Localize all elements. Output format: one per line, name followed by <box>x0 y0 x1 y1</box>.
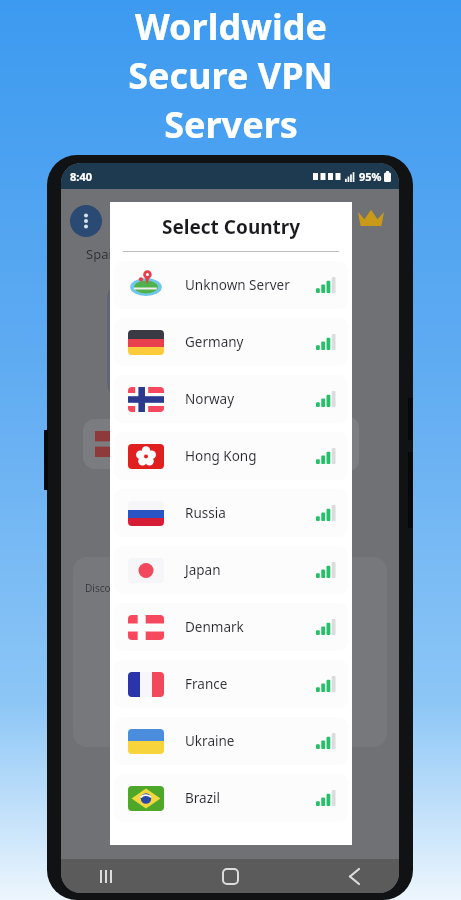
staticText: Disconnected <box>85 581 149 595</box>
staticText: Select Country <box>162 214 301 240</box>
button[interactable]: Home <box>213 859 247 893</box>
button[interactable]: Recent apps <box>89 859 123 893</box>
button[interactable]: France <box>114 660 348 708</box>
button[interactable]: Brazil <box>114 774 348 822</box>
button[interactable]: Denmark <box>114 603 348 651</box>
staticText: Ukraine <box>185 732 316 750</box>
staticText: 8:40 <box>70 169 92 184</box>
staticText: Unknown Server <box>185 276 316 294</box>
staticText: France <box>185 675 316 693</box>
staticText: Russia <box>185 504 316 522</box>
button[interactable]: More options <box>70 205 102 237</box>
staticText: Denmark <box>185 618 316 636</box>
staticText: Norway <box>185 390 316 408</box>
staticText: Germany <box>185 333 316 351</box>
button[interactable]: Power <box>309 485 351 527</box>
staticText: Spain <box>86 245 120 263</box>
button[interactable]: Japan <box>114 546 348 594</box>
staticText: Hong Kong <box>185 447 316 465</box>
staticText: Brazil <box>185 789 316 807</box>
staticText: Secure VPN <box>128 51 333 100</box>
button[interactable]: Hong Kong <box>114 432 348 480</box>
staticText: Worldwide <box>135 2 327 51</box>
button[interactable]: Unknown Server <box>114 261 348 309</box>
staticText: Japan <box>185 561 316 579</box>
staticText: Servers <box>164 100 298 149</box>
button[interactable]: Norway <box>114 375 348 423</box>
button[interactable]: Russia <box>114 489 348 537</box>
button[interactable]: Premium <box>355 205 387 229</box>
button[interactable]: Expand <box>297 417 359 471</box>
staticText: 95% <box>359 169 382 184</box>
button[interactable]: Back <box>337 859 371 893</box>
button[interactable]: Ukraine <box>114 717 348 765</box>
button[interactable]: Germany <box>114 318 348 366</box>
